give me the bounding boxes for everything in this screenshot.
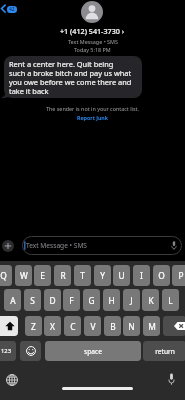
- staticText: K: [148, 295, 154, 306]
- staticText: H: [108, 295, 115, 306]
- button[interactable]: K: [142, 289, 159, 311]
- button[interactable]: Q: [0, 265, 12, 286]
- button[interactable]: W: [15, 265, 32, 286]
- button[interactable]: A: [4, 289, 21, 311]
- button[interactable]: D: [44, 289, 61, 311]
- staticText: A: [10, 295, 16, 306]
- staticText: C: [70, 321, 76, 332]
- button[interactable]: space: [45, 341, 141, 361]
- staticText: U: [118, 270, 125, 281]
- staticText: B: [110, 321, 116, 332]
- button[interactable]: Z: [25, 316, 42, 336]
- staticText: I: [140, 270, 143, 281]
- staticText: The sender is not in your contact list.: [46, 105, 139, 112]
- button[interactable]: X: [44, 316, 61, 336]
- button[interactable]: C: [64, 316, 81, 336]
- button[interactable]: 123: [0, 341, 16, 361]
- button[interactable]: Back: [0, 1, 19, 16]
- button[interactable]: Report Junk: [77, 114, 108, 121]
- staticText: N: [128, 321, 135, 332]
- staticText: P: [178, 270, 184, 281]
- button[interactable]: Add attachment: [2, 240, 14, 252]
- staticText: M: [148, 321, 156, 332]
- button[interactable]: U: [113, 265, 130, 286]
- button[interactable]: E: [34, 265, 51, 286]
- staticText: F: [69, 295, 74, 306]
- staticText: Today 5:18 PM: [74, 46, 111, 53]
- button[interactable]: return: [143, 341, 185, 361]
- button[interactable]: N: [123, 316, 140, 336]
- button[interactable]: I: [133, 265, 150, 286]
- staticText: 42: [9, 6, 15, 13]
- button[interactable]: Emoji: [20, 341, 41, 361]
- button[interactable]: Shift: [0, 316, 18, 336]
- button[interactable]: O: [153, 265, 170, 286]
- button[interactable]: Backspace: [163, 316, 185, 336]
- button[interactable]: Y: [94, 265, 111, 286]
- staticText: return: [155, 347, 175, 356]
- staticText: O: [158, 270, 165, 281]
- staticText: W: [20, 270, 28, 281]
- staticText: R: [60, 270, 66, 281]
- button[interactable]: Text Message • SMS: [22, 236, 182, 255]
- button[interactable]: H: [103, 289, 120, 311]
- button[interactable]: F: [63, 289, 80, 311]
- staticText: 123: [1, 347, 11, 355]
- button[interactable]: P: [172, 265, 185, 286]
- staticText: S: [30, 295, 35, 306]
- staticText: space: [84, 347, 102, 356]
- button[interactable]: B: [104, 316, 121, 336]
- button[interactable]: Dictate: [168, 373, 175, 385]
- staticText: Text Message • SMS: [68, 38, 118, 45]
- staticText: Q: [0, 270, 7, 281]
- staticText: J: [130, 295, 133, 306]
- button[interactable]: Change keyboard: [6, 374, 18, 386]
- button[interactable]: R: [54, 265, 71, 286]
- staticText: G: [88, 295, 95, 306]
- staticText: L: [168, 295, 173, 306]
- staticText: V: [90, 321, 96, 332]
- button[interactable]: S: [24, 289, 41, 311]
- button[interactable]: J: [123, 289, 140, 311]
- staticText: Text Message • SMS: [26, 241, 87, 250]
- staticText: Rent a center here. Quit being such a br…: [9, 59, 132, 96]
- button[interactable]: M: [143, 316, 160, 336]
- staticText: E: [40, 270, 45, 281]
- other: Voice message: [171, 241, 177, 250]
- staticText: X: [50, 321, 55, 332]
- button[interactable]: L: [162, 289, 179, 311]
- staticText: D: [49, 295, 56, 306]
- staticText: T: [80, 270, 85, 281]
- button[interactable]: G: [83, 289, 100, 311]
- staticText: Z: [31, 321, 36, 332]
- button[interactable]: T: [74, 265, 91, 286]
- staticText: +1 (412) 541-3730 ›: [60, 26, 125, 36]
- staticText: Y: [100, 270, 105, 281]
- staticText: Report Junk: [77, 114, 108, 121]
- button[interactable]: V: [84, 316, 101, 336]
